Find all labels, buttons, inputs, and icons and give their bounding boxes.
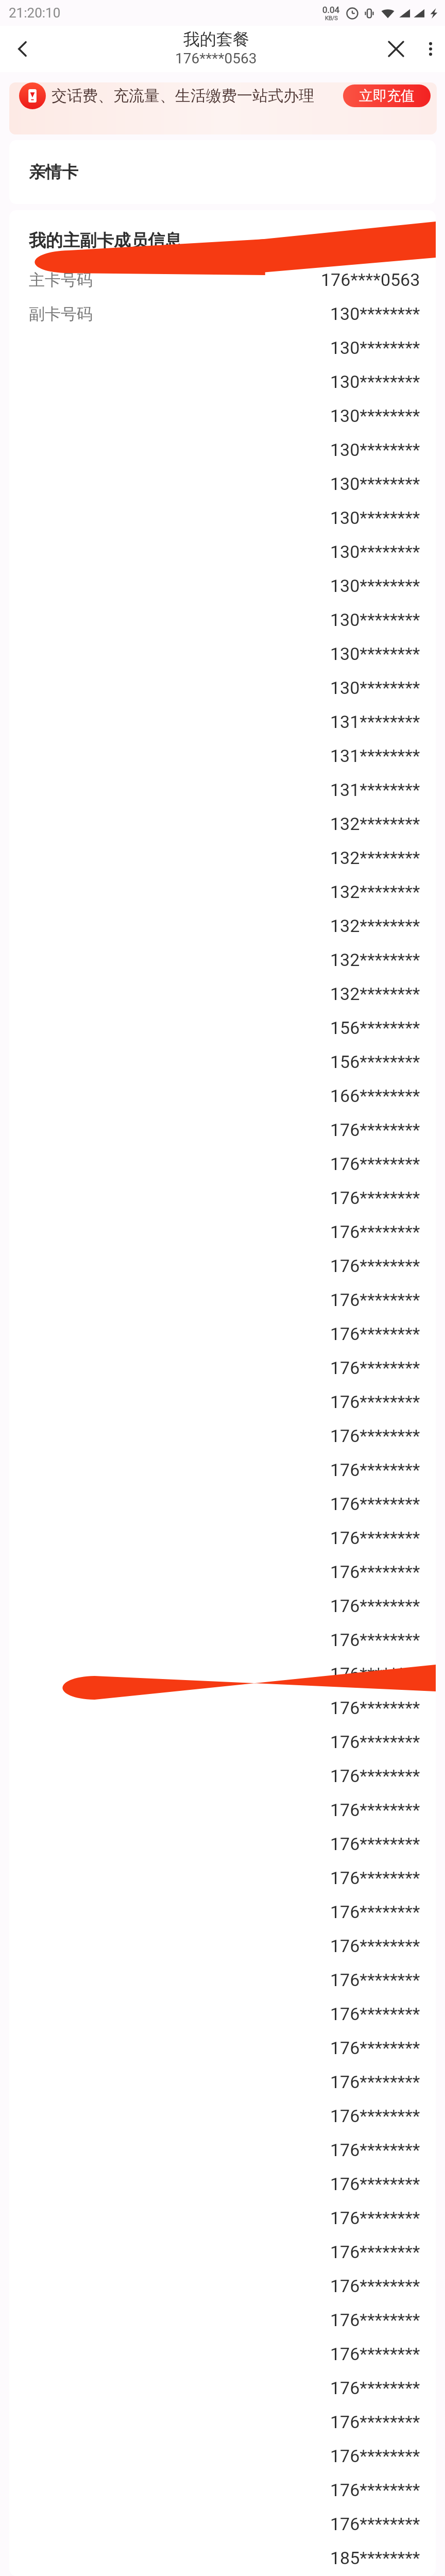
staticText: 130******** (330, 677, 420, 698)
staticText: 185******** (330, 2548, 420, 2568)
staticText: 176******** (330, 2344, 420, 2364)
staticText: 176******** (330, 1562, 420, 1582)
staticText: 176******** (330, 1392, 420, 1412)
button[interactable]: Close (376, 26, 416, 72)
button[interactable]: 亲情卡 (9, 140, 436, 204)
staticText: 亲情卡 (29, 162, 78, 182)
staticText: 176******** (330, 2276, 420, 2296)
button[interactable]: 立即充值 (343, 84, 431, 107)
staticText: 132******** (330, 916, 420, 936)
staticText: 176******** (330, 2242, 420, 2262)
staticText: 176******** (330, 2072, 420, 2092)
staticText: 176******** (330, 1766, 420, 1786)
staticText: 我的主副卡成员信息 (29, 230, 182, 251)
staticText: 176******** (330, 1664, 420, 1684)
staticText: 130******** (330, 507, 420, 528)
staticText: 176******** (330, 2480, 420, 2500)
staticText: 176******** (330, 1426, 420, 1446)
staticText: 176****0563 (175, 50, 257, 67)
staticText: 176******** (330, 1120, 420, 1140)
staticText: 131******** (330, 711, 420, 732)
staticText: 176******** (330, 1494, 420, 1514)
staticText: 156******** (330, 1018, 420, 1038)
staticText: 130******** (330, 303, 420, 324)
staticText: 166******** (330, 1086, 420, 1106)
staticText: 132******** (330, 950, 420, 970)
staticText: 176******** (330, 2174, 420, 2194)
staticText: 131******** (330, 779, 420, 800)
staticText: 176****0563 (321, 269, 420, 290)
staticText: 131******** (330, 745, 420, 766)
staticText: 176******** (330, 1698, 420, 1718)
staticText: 176******** (330, 1970, 420, 1990)
staticText: 176******** (330, 2412, 420, 2432)
staticText: 130******** (330, 337, 420, 358)
staticText: 176******** (330, 1732, 420, 1752)
staticText: 132******** (330, 814, 420, 834)
staticText: 176******** (330, 1358, 420, 1378)
staticText: 176******** (330, 2004, 420, 2024)
staticText: 176******** (330, 1834, 420, 1854)
button[interactable]: Back (0, 26, 45, 72)
staticText: 176******** (330, 2208, 420, 2228)
staticText: 21:20:10 (9, 5, 61, 21)
staticText: 副卡号码 (29, 304, 93, 324)
staticText: 176******** (330, 1800, 420, 1820)
staticText: 176******** (330, 2514, 420, 2534)
staticText: 176******** (330, 1324, 420, 1344)
staticText: 176******** (330, 2378, 420, 2398)
staticText: 176******** (330, 1936, 420, 1956)
staticText: 176******** (330, 2106, 420, 2126)
staticText: 176******** (330, 1460, 420, 1480)
staticText: KB/S (325, 15, 338, 22)
staticText: 176******** (330, 1188, 420, 1208)
staticText: 176******** (330, 1528, 420, 1548)
staticText: 130******** (330, 473, 420, 494)
button[interactable]: 交话费、充流量、生活缴费一站式办理 (9, 82, 437, 134)
staticText: 130******** (330, 371, 420, 392)
staticText: 176******** (330, 1868, 420, 1888)
staticText: 交话费、充流量、生活缴费一站式办理 (52, 86, 314, 106)
staticText: 176******** (330, 2446, 420, 2466)
staticText: 176******** (330, 1154, 420, 1174)
staticText: 130******** (330, 609, 420, 630)
staticText: 132******** (330, 882, 420, 902)
staticText: 156******** (330, 1052, 420, 1072)
staticText: 176******** (330, 2038, 420, 2058)
staticText: 130******** (330, 439, 420, 460)
staticText: 我的套餐 (183, 29, 249, 49)
staticText: 176******** (330, 1902, 420, 1922)
staticText: 0.04 (322, 5, 340, 15)
staticText: 176******** (330, 2140, 420, 2160)
staticText: 176******** (330, 1222, 420, 1242)
staticText: 130******** (330, 643, 420, 664)
staticText: 176******** (330, 1630, 420, 1650)
staticText: 立即充值 (359, 87, 415, 105)
staticText: 130******** (330, 405, 420, 426)
staticText: 主卡号码 (29, 270, 93, 290)
staticText: 176******** (330, 1596, 420, 1616)
staticText: 130******** (330, 541, 420, 562)
staticText: 176******** (330, 1290, 420, 1310)
staticText: 130******** (330, 575, 420, 596)
staticText: 176******** (330, 2310, 420, 2330)
staticText: 132******** (330, 848, 420, 868)
staticText: 176******** (330, 1256, 420, 1276)
button[interactable]: More options (416, 26, 445, 72)
staticText: 132******** (330, 984, 420, 1004)
